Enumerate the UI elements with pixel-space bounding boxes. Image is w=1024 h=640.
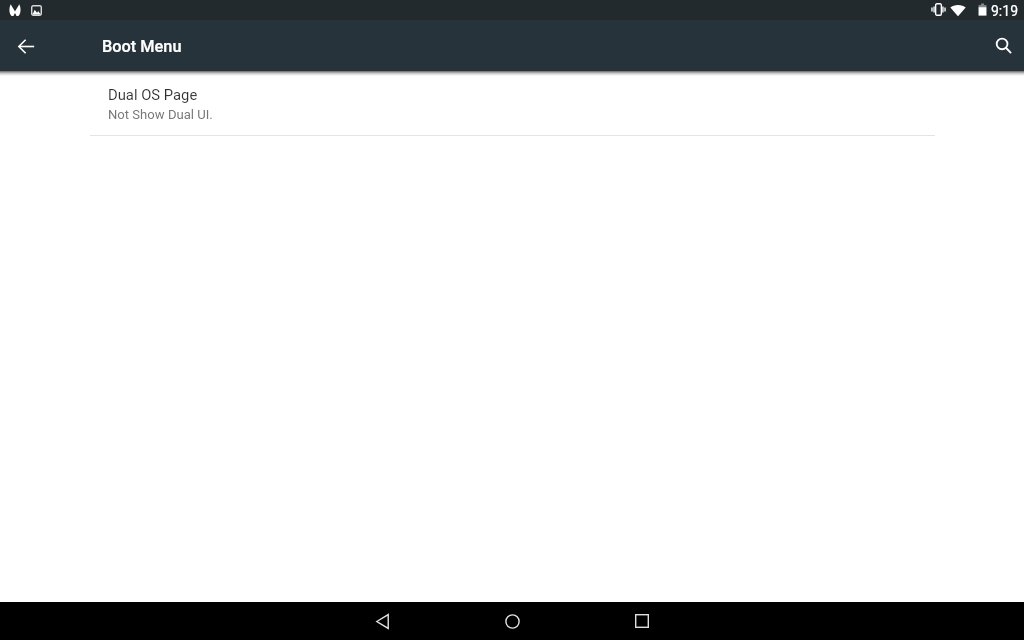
staticText: Dual OS Page	[108, 86, 198, 103]
button[interactable]: Search	[986, 28, 1022, 64]
button[interactable]: Dual OS Page	[0, 76, 1024, 136]
staticText: 9:19	[991, 3, 1018, 19]
staticText: Not Show Dual UI.	[108, 107, 213, 122]
button[interactable]: Navigate up	[9, 29, 43, 63]
staticText: Boot Menu	[102, 37, 182, 56]
button[interactable]: Home	[482, 602, 542, 640]
button[interactable]: Recent apps	[612, 602, 672, 640]
button[interactable]: Back	[352, 602, 412, 640]
